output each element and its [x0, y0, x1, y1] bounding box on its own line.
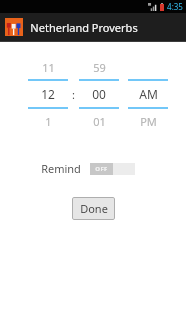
button[interactable]: AM or PM	[128, 55, 168, 133]
staticText: PM	[140, 114, 157, 129]
staticText: AM	[139, 86, 158, 102]
staticText: 01	[93, 114, 106, 129]
button[interactable]: Done	[72, 197, 115, 220]
staticText: :	[72, 87, 75, 102]
staticText: 59	[93, 60, 106, 75]
staticText: 11	[42, 60, 55, 75]
staticText: 12	[41, 86, 55, 102]
staticText: Done	[80, 201, 108, 216]
staticText: 1	[45, 114, 52, 129]
staticText: 00	[92, 86, 106, 102]
staticText: Netherland Proverbs	[30, 20, 138, 35]
other: App icon	[5, 18, 23, 36]
button[interactable]: Minute	[79, 55, 119, 133]
staticText: OFF	[95, 165, 108, 173]
staticText: Remind	[41, 161, 81, 176]
button[interactable]: Hour	[28, 55, 68, 133]
staticText: 4:35	[167, 1, 183, 12]
button[interactable]: Remind switch, OFF	[90, 163, 135, 175]
